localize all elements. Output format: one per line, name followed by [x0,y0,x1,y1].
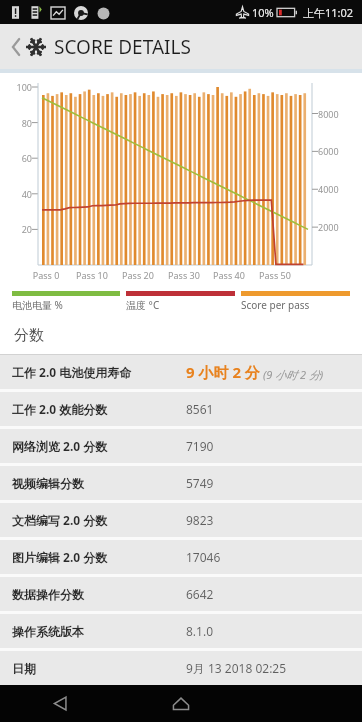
staticText: (9 小时 2 分) [263,367,324,382]
button[interactable]: 工作 2.0 效能分数 [0,392,362,426]
staticText: 7190 [186,438,214,454]
staticText: 8.1.0 [186,623,214,639]
staticText: 40 [4,188,32,200]
staticText: 6642 [186,586,214,602]
staticText: 80 [4,117,32,129]
button[interactable]: Home [120,685,241,722]
staticText: 9823 [186,512,214,528]
button[interactable]: 工作 2.0 电池使用寿命 [0,355,362,389]
staticText: 数据操作分数 [12,587,84,602]
staticText: Pass 0 [26,269,66,281]
staticText: 电池电量 % [12,298,63,312]
staticText: 4000 [318,183,339,195]
staticText: 视频编辑分数 [12,476,84,491]
staticText: 8561 [186,401,214,417]
staticText: 17046 [186,549,221,565]
staticText: 6000 [318,145,339,157]
staticText: 9 小时 2 分 [186,362,260,382]
staticText: 5749 [186,475,214,491]
button[interactable]: 图片编辑 2.0 分数 [0,540,362,574]
staticText: 工作 2.0 电池使用寿命 [12,364,132,380]
staticText: 网络浏览 2.0 分数 [12,438,108,454]
staticText: 60 [4,152,32,164]
staticText: Pass 40 [209,269,249,281]
staticText: Pass 20 [118,269,158,281]
staticText: 100 [4,81,32,93]
button[interactable]: 网络浏览 2.0 分数 [0,429,362,463]
staticText: Pass 30 [164,269,204,281]
button[interactable]: 视频编辑分数 [0,466,362,500]
button[interactable]: 日期 [0,651,362,685]
staticText: 9月 13 2018 02:25 [186,660,287,676]
staticText: 10% [252,5,274,20]
staticText: Pass 10 [72,269,112,281]
staticText: 分数 [14,326,44,345]
staticText: Pass 50 [255,269,295,281]
staticText: 文档编写 2.0 分数 [12,512,108,528]
staticText: 上午11:02 [303,5,354,20]
staticText: 图片编辑 2.0 分数 [12,549,108,565]
button[interactable]: 文档编写 2.0 分数 [0,503,362,537]
button[interactable]: 操作系统版本 [0,614,362,648]
button[interactable]: 数据操作分数 [0,577,362,611]
staticText: Score per pass [241,298,310,312]
staticText: 日期 [12,661,36,676]
staticText: 2000 [318,221,339,233]
button[interactable]: Back [0,685,120,722]
staticText: 温度 °C [126,298,160,312]
staticText: 8000 [318,108,339,120]
staticText: 工作 2.0 效能分数 [12,401,108,417]
staticText: 操作系统版本 [12,624,84,639]
button[interactable]: Back [8,32,24,62]
staticText: SCORE DETAILS [54,34,191,60]
staticText: 20 [4,223,32,235]
